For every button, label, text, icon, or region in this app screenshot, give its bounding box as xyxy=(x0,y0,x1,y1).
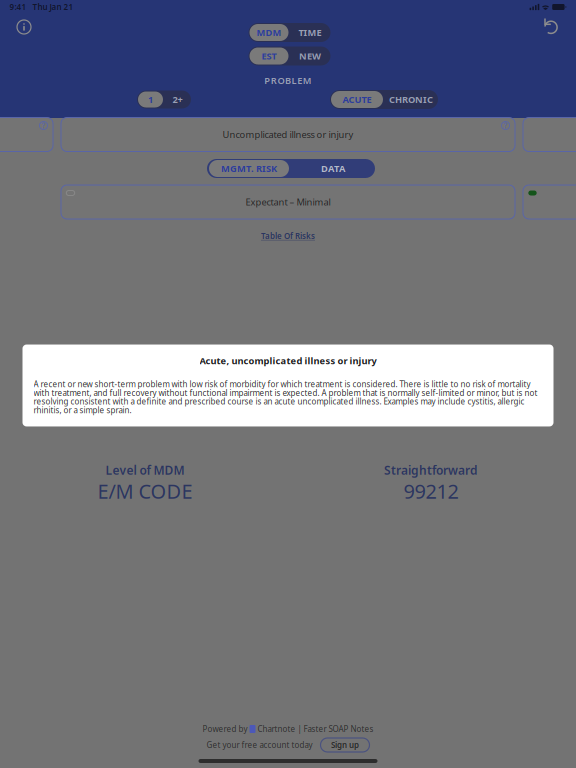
button[interactable]: Sign up xyxy=(320,738,369,752)
staticText: 2+ xyxy=(172,93,182,106)
staticText: Chartnote | Faster SOAP Notes xyxy=(255,724,373,734)
staticText: TIME xyxy=(298,26,321,39)
button[interactable]: MGMT. RISK xyxy=(207,159,375,178)
staticText: Expectant – Minimal xyxy=(245,196,330,208)
button[interactable]: Table Of Risks xyxy=(253,227,323,245)
staticText: Uncomplicated illness or injury xyxy=(222,128,353,141)
staticText: A recent or new short-term problem with … xyxy=(33,379,537,415)
staticText: ACUTE xyxy=(342,93,371,106)
button[interactable]: Undo xyxy=(534,12,568,42)
staticText: MDM xyxy=(256,26,281,39)
staticText: Level of MDM xyxy=(105,462,184,478)
staticText: DATA xyxy=(321,162,345,175)
staticText: E/M CODE xyxy=(97,478,192,504)
button[interactable]: Information xyxy=(7,12,41,42)
button[interactable]: EST xyxy=(248,46,330,65)
button[interactable]: 1 xyxy=(137,90,191,108)
staticText: ? xyxy=(41,120,45,131)
button[interactable]: MDM xyxy=(248,23,330,42)
staticText: Table Of Risks xyxy=(261,231,315,241)
staticText: 99212 xyxy=(403,478,458,504)
staticText: Thu Jan 21 xyxy=(32,2,73,12)
staticText: Acute, uncomplicated illness or injury xyxy=(199,355,376,367)
staticText: EST xyxy=(261,50,276,62)
staticText: 1 xyxy=(148,93,153,106)
staticText: Get your free account today xyxy=(206,740,312,750)
staticText: Straightforward xyxy=(384,462,478,478)
button[interactable]: ACUTE xyxy=(330,90,438,109)
staticText: PROBLEM xyxy=(264,74,312,87)
staticText: Powered by xyxy=(202,724,249,734)
staticText: MGMT. RISK xyxy=(221,162,277,175)
staticText: CHRONIC xyxy=(389,93,433,106)
staticText: ? xyxy=(503,120,507,131)
staticText: Sign up xyxy=(331,740,359,750)
button[interactable]: Uncomplicated illness or injury xyxy=(61,117,515,151)
button[interactable]: Expectant – Minimal xyxy=(61,185,515,219)
staticText: NEW xyxy=(299,50,321,62)
staticText: 9:41 xyxy=(9,2,26,12)
